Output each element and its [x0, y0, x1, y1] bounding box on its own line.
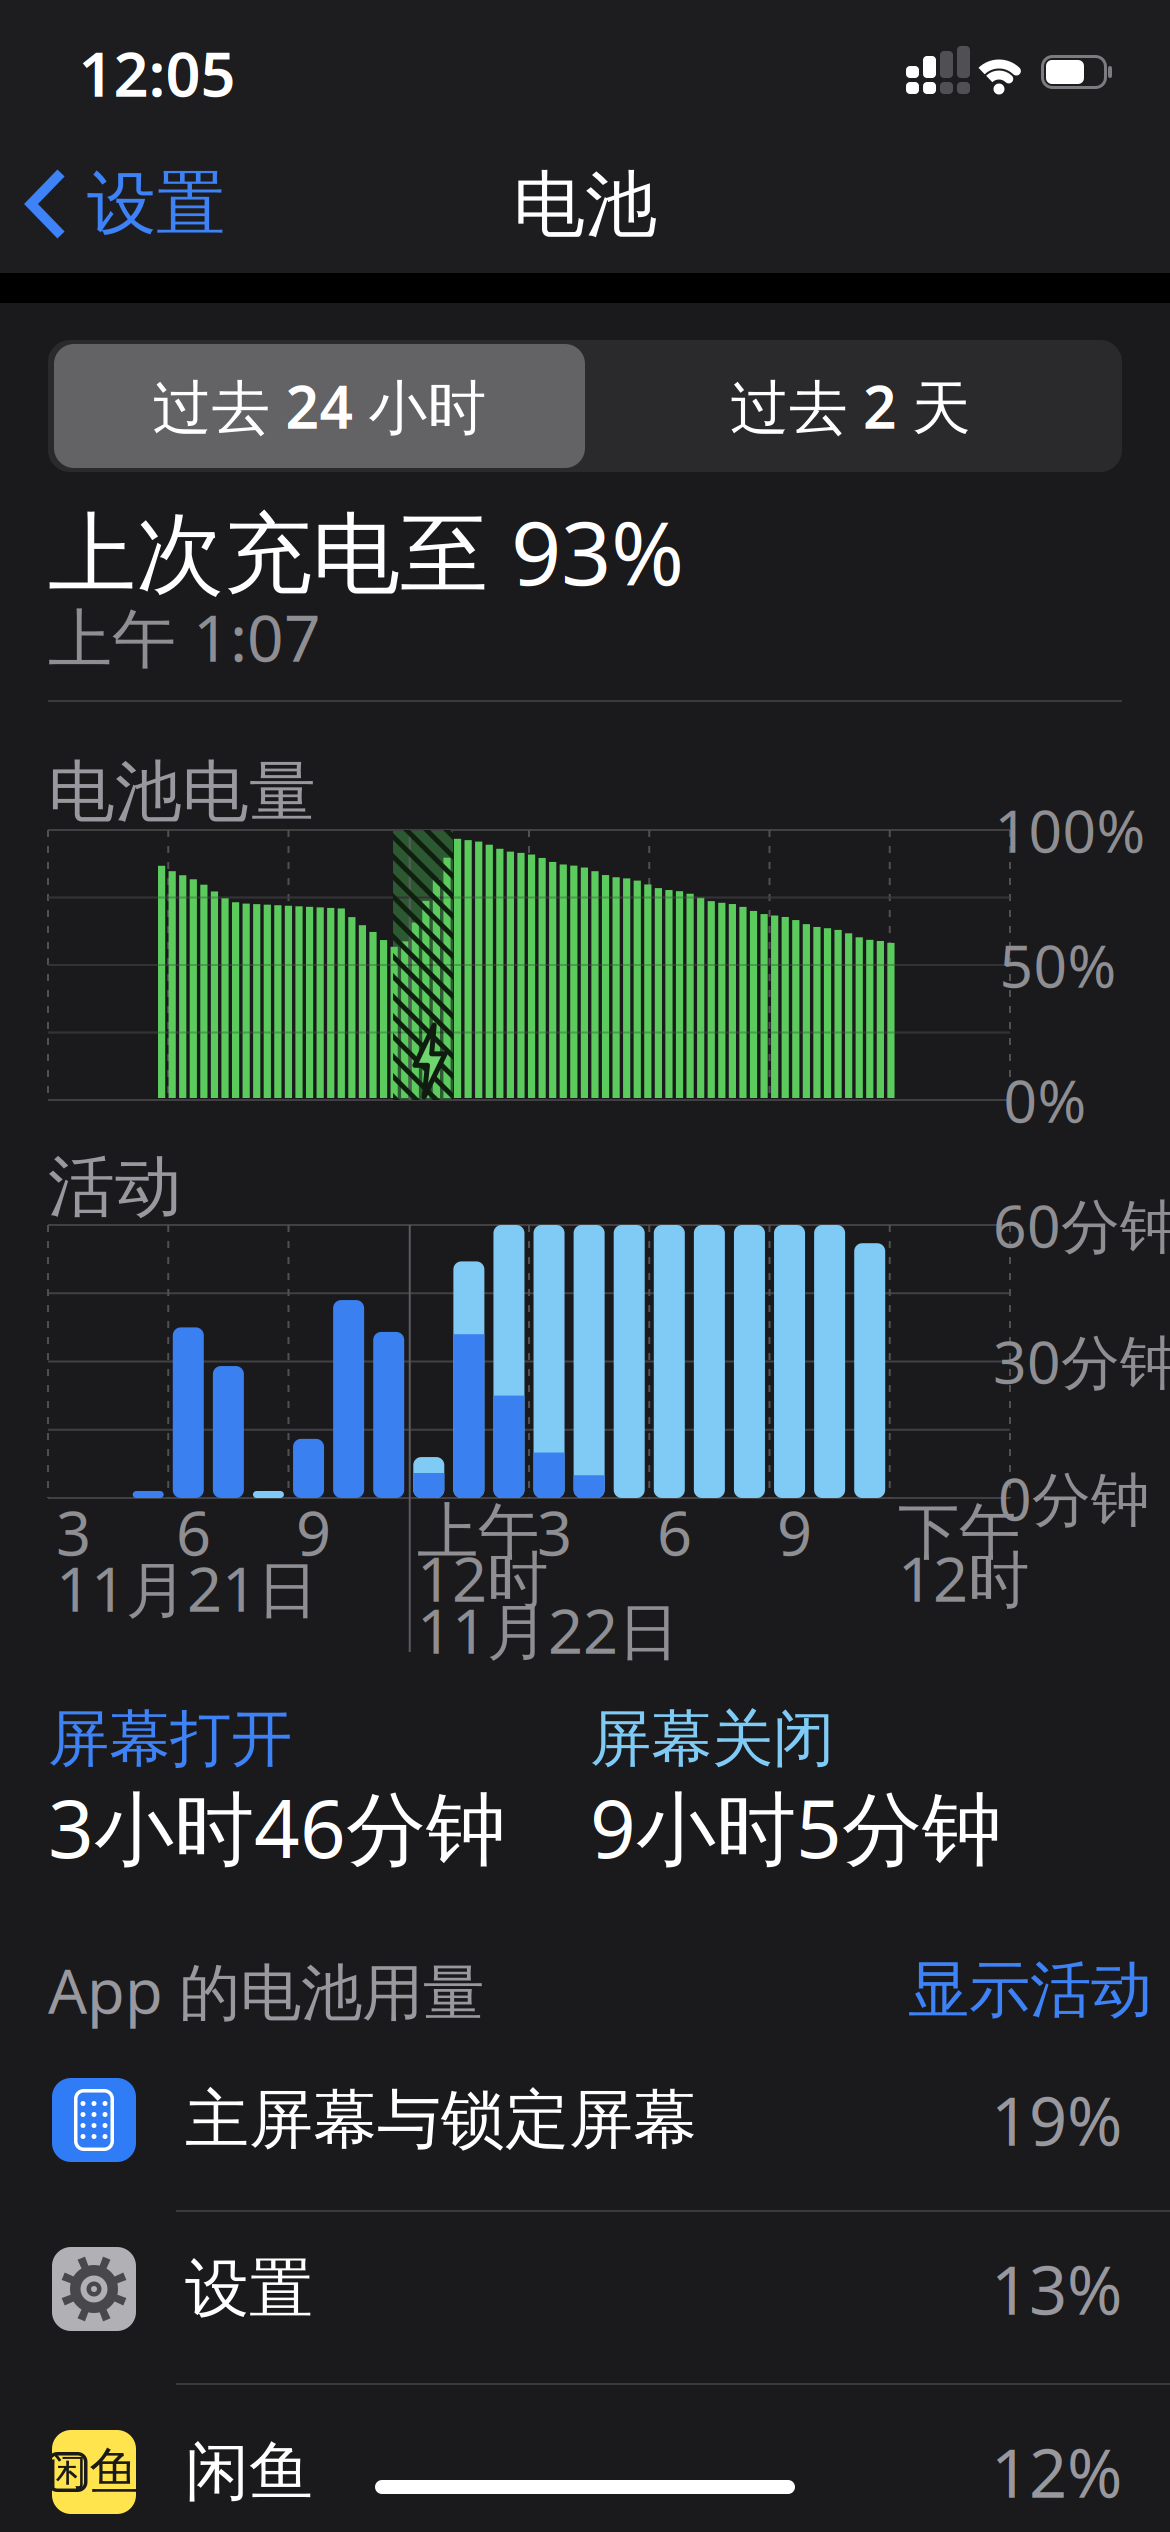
staticText: 12% [991, 2428, 1122, 2516]
staticText: 闲 [49, 2449, 86, 2495]
staticText: 过去 24 小时 [152, 367, 486, 445]
staticText: 3 [56, 1491, 91, 1573]
staticText: 主屏幕与锁定屏幕 [185, 2081, 697, 2159]
staticText: 12:05 [78, 32, 235, 114]
staticText: 0% [1003, 1061, 1086, 1139]
staticText: 0分钟 [998, 1459, 1150, 1537]
staticText: 9 [296, 1491, 331, 1573]
staticText: 电池 [513, 161, 657, 249]
staticText: 3小时46分钟 [48, 1774, 506, 1880]
staticText: App 的电池用量 [48, 1949, 484, 2031]
button[interactable]: 主屏幕与锁定屏幕 [0, 2035, 1170, 2205]
button[interactable]: 设置 [31, 161, 225, 247]
staticText: 电池电量 [48, 751, 316, 833]
staticText: 显示活动 [908, 1952, 1152, 2028]
staticText: 设置 [87, 161, 225, 247]
button[interactable]: 过去 24 小时 [54, 344, 585, 468]
staticText: 上次充电至 93% [48, 493, 684, 609]
staticText: 屏幕关闭 [590, 1701, 834, 1777]
staticText: 设置 [185, 2250, 313, 2328]
staticText: 9 [777, 1491, 812, 1573]
button[interactable]: 显示活动 [908, 1952, 1152, 2028]
staticText: 100% [994, 791, 1145, 869]
staticText: 30分钟 [993, 1322, 1170, 1400]
staticText: 屏幕打开 [48, 1701, 292, 1777]
staticText: 12时 [898, 1537, 1029, 1619]
staticText: 鱼 [89, 2441, 140, 2503]
staticText: 12时 [417, 1537, 548, 1619]
staticText: 60分钟 [993, 1186, 1170, 1264]
staticText: 活动 [48, 1146, 182, 1228]
staticText: 6 [176, 1491, 211, 1573]
staticText: 11月21日 [56, 1547, 318, 1629]
staticText: 11月22日 [417, 1589, 679, 1671]
button[interactable]: 设置 [0, 2204, 1170, 2374]
staticText: 上午 [417, 1494, 539, 1570]
staticText: 过去 2 天 [730, 367, 971, 445]
staticText: 下午 [898, 1494, 1020, 1570]
staticText: 3 [537, 1491, 572, 1573]
staticText: 6 [657, 1491, 692, 1573]
staticText: 13% [991, 2245, 1122, 2333]
staticText: 50% [999, 926, 1116, 1004]
button[interactable]: 闲 [0, 2387, 1170, 2532]
staticText: 9小时5分钟 [590, 1774, 1002, 1880]
staticText: 上午 1:07 [48, 594, 321, 679]
button[interactable]: 过去 2 天 [585, 344, 1116, 468]
staticText: 闲鱼 [185, 2433, 313, 2511]
staticText: 19% [991, 2076, 1122, 2164]
